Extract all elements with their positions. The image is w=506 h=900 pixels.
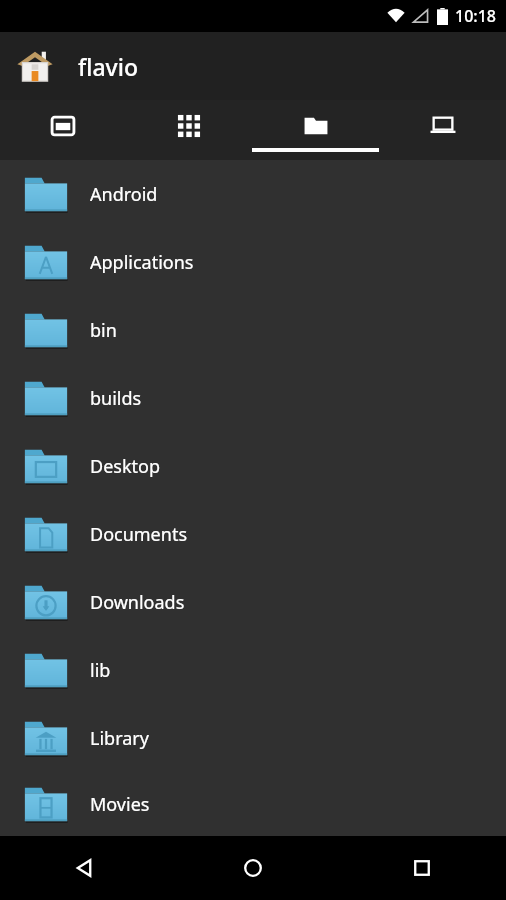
button[interactable]: flavio bbox=[0, 32, 506, 100]
button[interactable]: builds bbox=[0, 364, 506, 432]
staticText: Android bbox=[90, 182, 158, 207]
staticText: 10:18 bbox=[455, 5, 496, 27]
button[interactable]: Applications bbox=[0, 228, 506, 296]
button[interactable]: Desktop bbox=[0, 432, 506, 500]
staticText: flavio bbox=[78, 51, 139, 82]
button[interactable]: bin bbox=[0, 296, 506, 364]
staticText: bin bbox=[90, 318, 117, 343]
staticText: Library bbox=[90, 726, 149, 751]
staticText: builds bbox=[90, 386, 142, 411]
button[interactable]: Android bbox=[0, 160, 506, 228]
staticText: Documents bbox=[90, 522, 188, 547]
button[interactable]: Downloads bbox=[0, 568, 506, 636]
button[interactable]: All apps bbox=[126, 100, 252, 160]
button[interactable]: Back bbox=[0, 836, 168, 900]
staticText: lib bbox=[90, 658, 111, 683]
button[interactable]: Documents bbox=[0, 500, 506, 568]
button[interactable]: Computer bbox=[379, 100, 506, 160]
button[interactable]: Folders bbox=[252, 100, 379, 160]
staticText: Applications bbox=[90, 250, 194, 275]
button[interactable]: Recents bbox=[337, 836, 506, 900]
staticText: Desktop bbox=[90, 454, 160, 479]
button[interactable]: lib bbox=[0, 636, 506, 704]
staticText: Downloads bbox=[90, 590, 185, 615]
button[interactable]: Recent bbox=[0, 100, 126, 160]
button[interactable]: Home bbox=[168, 836, 337, 900]
button[interactable]: Movies bbox=[0, 772, 506, 836]
staticText: Movies bbox=[90, 792, 150, 817]
button[interactable]: Library bbox=[0, 704, 506, 772]
